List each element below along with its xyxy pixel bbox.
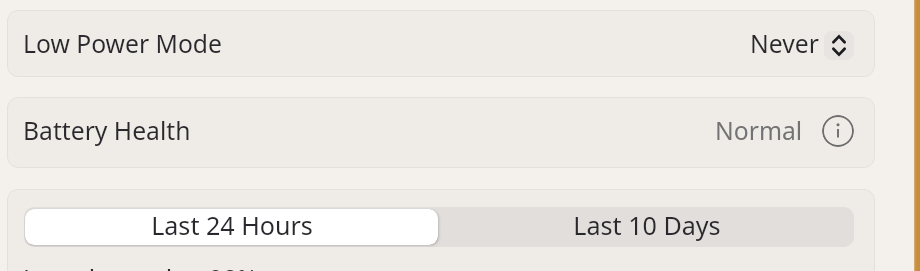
button[interactable]: Low Power Mode xyxy=(7,10,875,77)
staticText: Normal xyxy=(715,114,803,148)
button[interactable]: Battery Health information xyxy=(822,115,854,147)
staticText: Battery Health xyxy=(23,114,191,148)
button[interactable]: Battery Health xyxy=(7,97,875,168)
staticText: Low Power Mode xyxy=(23,27,222,61)
button[interactable]: Choose Low Power Mode option xyxy=(824,31,854,60)
staticText: Last charged to 98% xyxy=(23,262,258,271)
staticText: Last 24 Hours xyxy=(151,209,313,242)
button[interactable]: Last 10 Days xyxy=(439,207,854,247)
staticText: Last 10 Days xyxy=(573,208,721,242)
button[interactable]: Last 24 Hours xyxy=(25,209,438,245)
staticText: Never xyxy=(750,27,819,61)
